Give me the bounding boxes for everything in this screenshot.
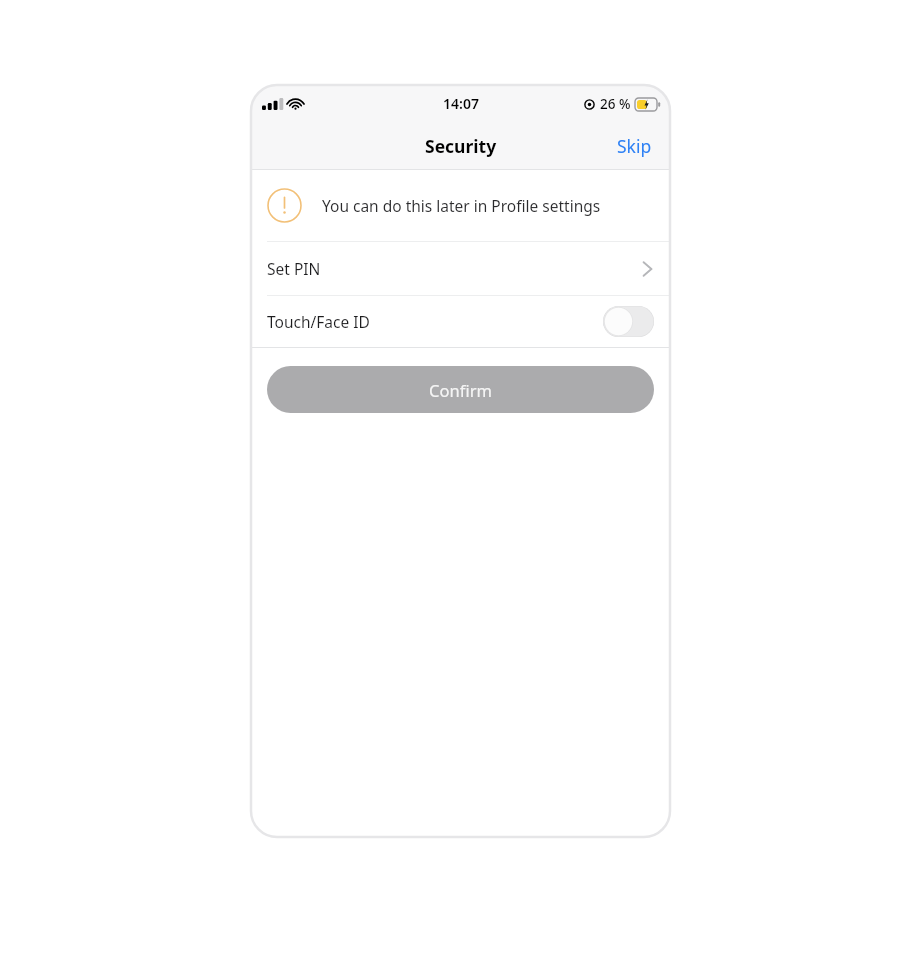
button[interactable]: Touch/Face ID: [251, 296, 670, 347]
staticText: 14:07: [443, 94, 479, 113]
staticText: Set PIN: [267, 258, 321, 279]
staticText: Touch/Face ID: [267, 311, 370, 332]
staticText: You can do this later in Profile setting…: [322, 195, 601, 216]
staticText: Skip: [617, 134, 652, 158]
button[interactable]: Skip: [599, 124, 670, 168]
staticText: Security: [425, 134, 497, 158]
button[interactable]: Set PIN: [251, 242, 670, 295]
staticText: 26 %: [600, 95, 631, 113]
button[interactable]: Confirm: [267, 366, 654, 413]
staticText: Confirm: [429, 379, 492, 401]
button[interactable]: Toggle Touch or Face ID: [603, 306, 654, 337]
